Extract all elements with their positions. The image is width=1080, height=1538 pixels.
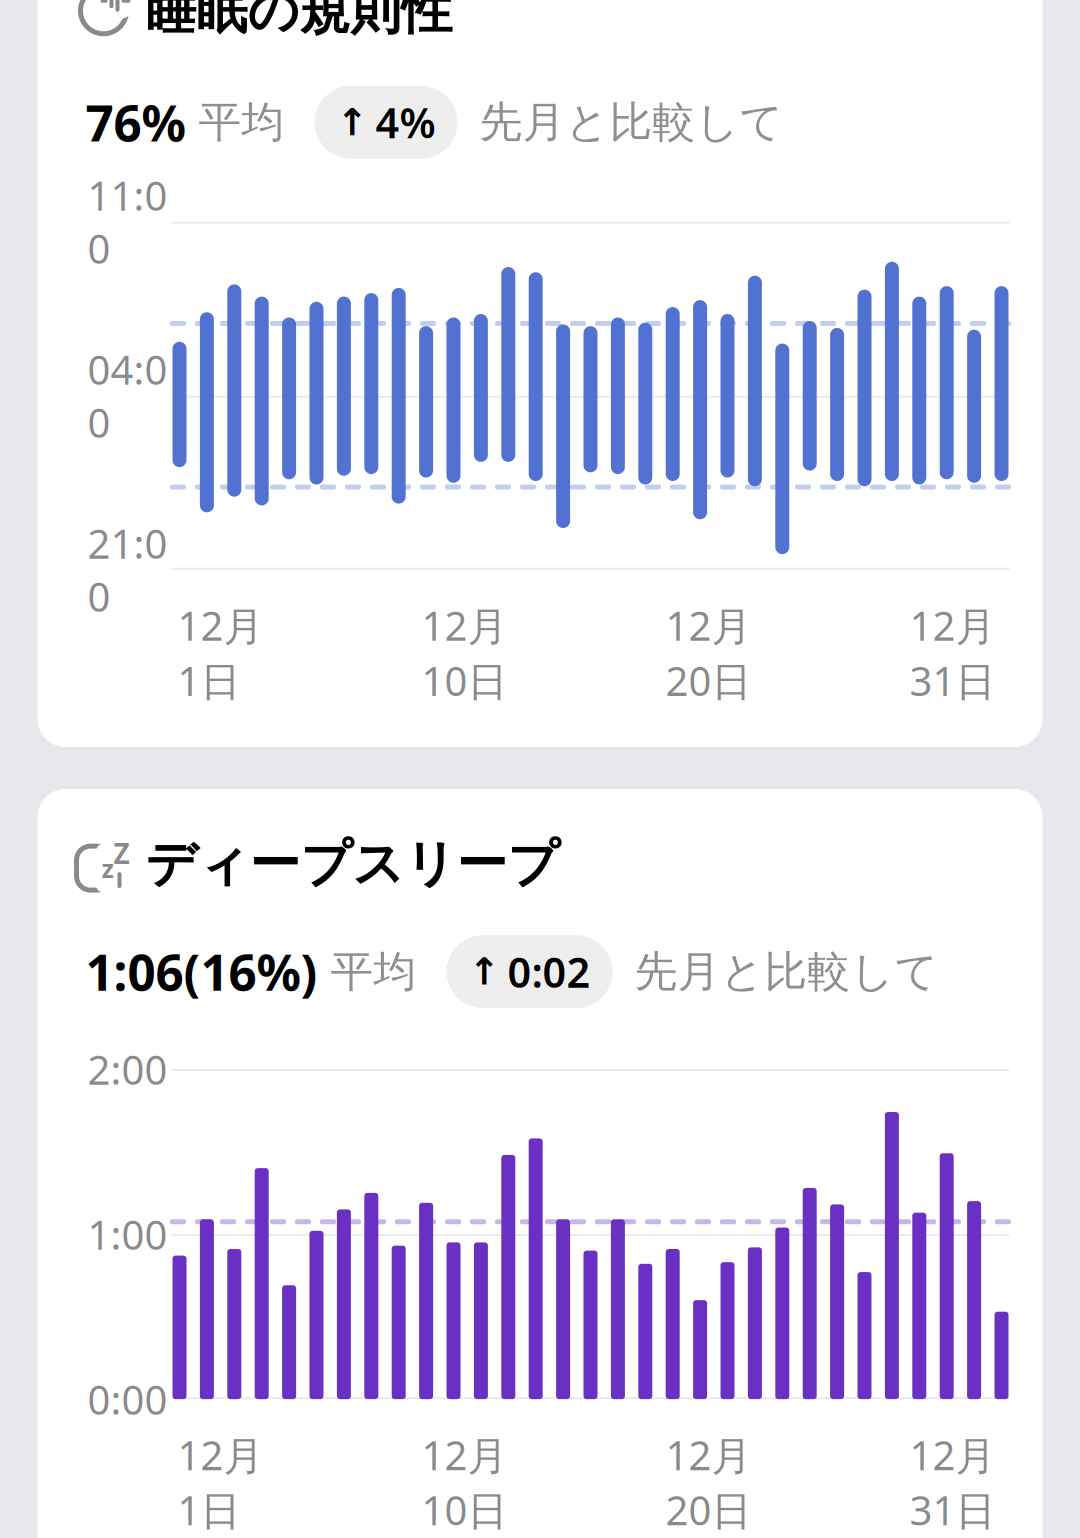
staticText: 2:00 — [87, 1043, 167, 1096]
staticText: Z — [113, 834, 129, 872]
staticText: 20日 — [665, 1483, 751, 1536]
staticText: 1日 — [177, 1483, 240, 1536]
staticText: ↑ — [336, 101, 367, 143]
staticText: 12月 — [665, 1428, 751, 1481]
staticText: 12月 — [177, 599, 263, 652]
staticText: z — [101, 851, 113, 885]
staticText: 1:00 — [87, 1208, 167, 1261]
staticText: ディープスリープ — [145, 833, 559, 895]
staticText: 先月と比較して — [634, 945, 938, 998]
staticText: 1:06(16%) — [85, 939, 317, 1004]
staticText: 0:02 — [507, 944, 590, 999]
staticText: 12月 — [909, 599, 995, 652]
staticText: 31日 — [909, 1483, 995, 1536]
staticText: 睡眠の規則性 — [145, 0, 452, 42]
staticText: 4% — [375, 95, 435, 150]
staticText: 0:00 — [87, 1373, 167, 1426]
staticText: 先月と比較して — [479, 96, 783, 148]
staticText: 12月 — [421, 599, 507, 652]
staticText: 1日 — [177, 654, 240, 707]
staticText: 12月 — [909, 1428, 995, 1481]
staticText: 20日 — [665, 654, 751, 707]
button[interactable]: z — [37, 789, 1042, 1538]
button[interactable]: 睡眠の規則性 — [37, 0, 1042, 747]
staticText: 平均 — [317, 945, 416, 998]
staticText: 04:00 — [87, 343, 167, 449]
staticText: 31日 — [909, 654, 995, 707]
staticText: 21:00 — [87, 517, 167, 623]
staticText: 10日 — [421, 1483, 507, 1536]
staticText: 12月 — [177, 1428, 263, 1481]
staticText: 76% — [85, 90, 185, 155]
staticText: 平均 — [185, 96, 284, 148]
staticText: 11:00 — [87, 169, 167, 275]
staticText: 10日 — [421, 654, 507, 707]
staticText: ↑ — [468, 950, 499, 993]
staticText: 12月 — [421, 1428, 507, 1481]
staticText: 12月 — [665, 599, 751, 652]
